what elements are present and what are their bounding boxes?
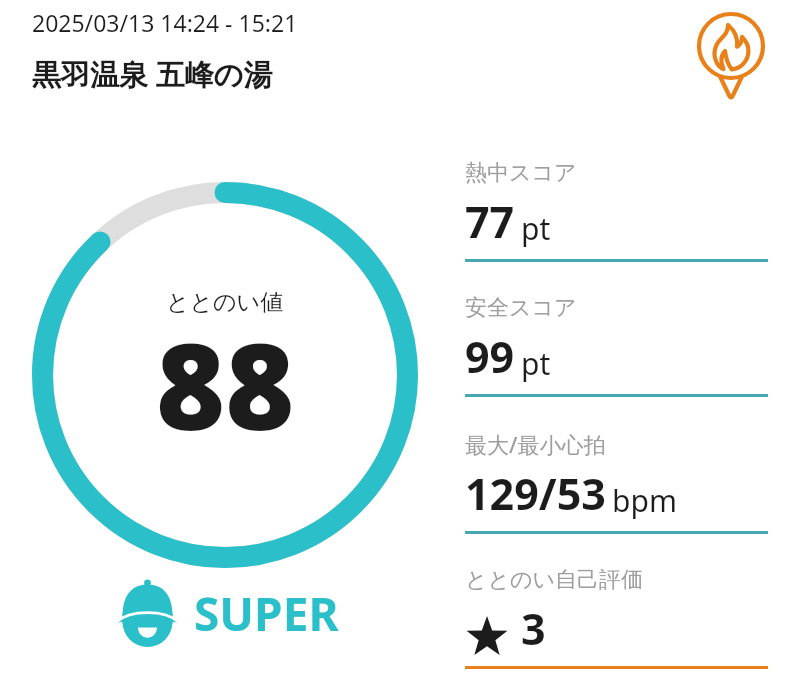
staticText: 熱中スコア (465, 159, 577, 187)
staticText: 安全スコア (465, 294, 577, 322)
button[interactable]: Sauna heat level (692, 8, 772, 100)
staticText: pt (521, 208, 551, 249)
staticText: 黒羽温泉 五峰の湯 (32, 54, 273, 94)
button[interactable]: SUPER (118, 581, 339, 649)
staticText: bpm (612, 480, 677, 521)
staticText: 77 (465, 192, 515, 251)
button[interactable]: ととのい自己評価 (465, 563, 768, 669)
staticText: 最大/最小心拍 (465, 429, 606, 459)
staticText: 88 (156, 304, 295, 465)
staticText: 99 (465, 327, 515, 386)
button[interactable]: ととのい値 88 (32, 182, 418, 568)
staticText: 129/53 (465, 464, 606, 523)
staticText: SUPER (194, 582, 339, 645)
staticText: pt (521, 343, 551, 384)
button[interactable]: 安全スコア (465, 291, 768, 397)
staticText: 2025/03/13 14:24 - 15:21 (32, 7, 298, 38)
staticText: ととのい値 (166, 288, 284, 317)
staticText: 3 (521, 599, 546, 658)
button[interactable]: 熱中スコア (465, 156, 768, 262)
staticText: ととのい自己評価 (465, 566, 644, 594)
button[interactable]: 最大/最小心拍 (465, 426, 768, 534)
